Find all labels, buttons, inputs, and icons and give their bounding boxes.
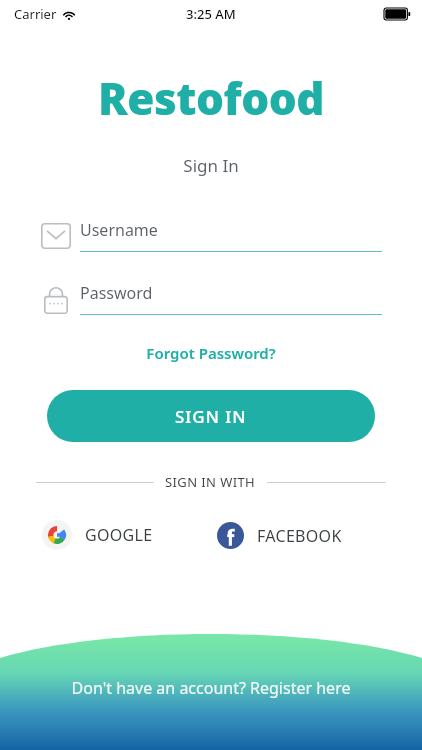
staticText: Don't have an account? Register here bbox=[0, 677, 422, 699]
staticText: SIGN IN WITH bbox=[165, 473, 256, 491]
staticText: Password bbox=[80, 282, 153, 304]
button[interactable]: GOOGLE bbox=[0, 514, 211, 556]
button[interactable]: Forgot Password? bbox=[0, 341, 422, 365]
button[interactable]: Password bbox=[40, 282, 382, 315]
staticText: Carrier bbox=[14, 5, 57, 23]
other: Password bbox=[40, 283, 72, 315]
staticText: Restofood bbox=[0, 68, 422, 128]
button[interactable]: FACEBOOK bbox=[211, 516, 422, 555]
staticText: Forgot Password? bbox=[0, 343, 422, 363]
staticText: GOOGLE bbox=[85, 524, 153, 546]
staticText: SIGN IN bbox=[175, 405, 247, 428]
staticText: Username bbox=[80, 219, 158, 241]
staticText: Sign In bbox=[0, 154, 422, 177]
button[interactable]: SIGN IN bbox=[47, 390, 375, 442]
button[interactable]: Don't have an account? Register here bbox=[0, 669, 422, 707]
button[interactable]: Email bbox=[40, 219, 382, 252]
staticText: FACEBOOK bbox=[257, 525, 342, 547]
other: Email bbox=[40, 220, 72, 252]
staticText: 3:25 AM bbox=[186, 5, 236, 23]
